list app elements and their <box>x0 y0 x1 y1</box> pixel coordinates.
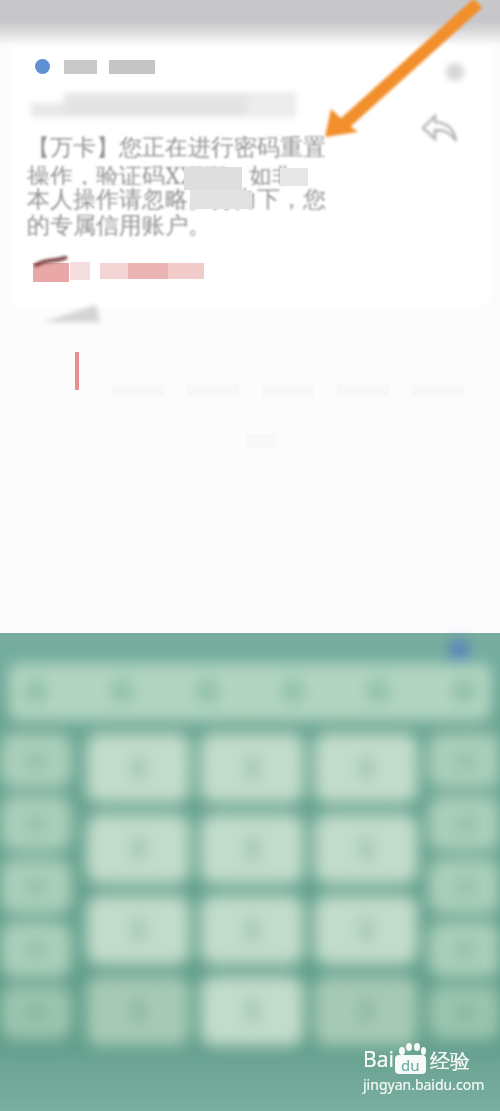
staticText: 经验 <box>430 1049 470 1074</box>
button[interactable]: Key <box>76 733 191 797</box>
button[interactable]: Keyboard tool <box>251 661 334 723</box>
button[interactable]: Key <box>423 733 500 797</box>
button[interactable]: Key <box>423 989 500 1053</box>
button[interactable]: Keyboard tool <box>417 661 500 723</box>
staticText: jingyan.baidu.com <box>363 1075 485 1094</box>
button[interactable]: Key <box>307 733 423 797</box>
button[interactable]: Key <box>423 797 500 861</box>
staticText: du <box>401 1055 420 1074</box>
button[interactable]: 【万卡】您正在进行密码重置 <box>11 10 491 307</box>
button[interactable]: Keyboard tool <box>334 661 417 723</box>
button[interactable]: Key <box>0 925 76 989</box>
button[interactable]: Keyboard tool <box>84 661 168 723</box>
button[interactable]: Key <box>0 989 76 1053</box>
staticText: 本人操作请忽略。努力下，您 <box>27 185 326 211</box>
button[interactable]: Key <box>76 797 191 861</box>
button[interactable]: More options <box>438 55 472 89</box>
button[interactable]: Key <box>191 797 307 861</box>
button[interactable]: Key <box>423 925 500 989</box>
button[interactable]: Key <box>0 797 76 861</box>
button[interactable]: Key <box>76 925 191 989</box>
button[interactable]: Key <box>191 925 307 989</box>
button[interactable]: Reply <box>420 113 464 157</box>
button[interactable]: Key <box>307 861 423 925</box>
button[interactable]: Key <box>423 861 500 925</box>
button[interactable]: Key <box>307 989 423 1053</box>
button[interactable]: Key <box>307 797 423 861</box>
button[interactable]: Key <box>191 861 307 925</box>
button[interactable]: Keyboard tool <box>168 661 251 723</box>
staticText: Bai <box>363 1045 394 1074</box>
button[interactable]: Key <box>191 989 307 1053</box>
button[interactable]: Key <box>0 861 76 925</box>
button[interactable]: Key <box>0 733 76 797</box>
button[interactable]: Key <box>76 861 191 925</box>
staticText: 【万卡】您正在进行密码重置 <box>27 133 326 159</box>
button[interactable]: Keyboard tool <box>0 661 84 723</box>
staticText: 的专属信用账户。 <box>27 211 211 237</box>
staticText: 操作，验证码XXXX，如非 <box>27 159 295 185</box>
button[interactable]: Key <box>307 925 423 989</box>
button[interactable]: Key <box>191 733 307 797</box>
button[interactable]: Key <box>76 989 191 1053</box>
